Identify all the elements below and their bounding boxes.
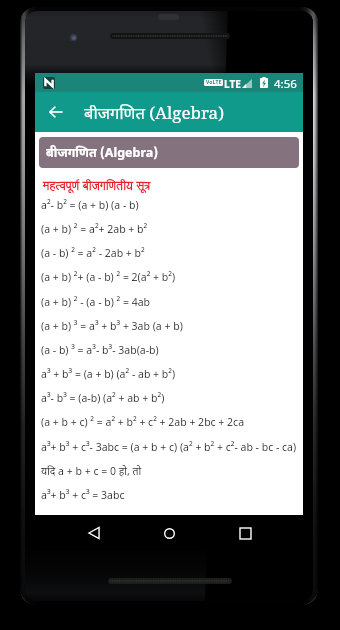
staticText: (a + b) ³ = a³ + b³ + 3ab (a + b) xyxy=(41,319,309,333)
staticText: (a - b) ² = a² - 2ab + b² xyxy=(41,246,309,260)
staticText: a³+ b³ + c³- 3abc = (a + b + c) (a² + b²… xyxy=(41,440,309,454)
staticText: a³- b³ = (a-b) (a² + ab + b²) xyxy=(41,391,309,405)
staticText: यदि a + b + c = 0 हो, तो xyxy=(41,464,309,478)
staticText: a³ + b³ = (a + b) (a² - ab + b²) xyxy=(41,367,309,381)
button[interactable]: Home xyxy=(152,516,186,550)
staticText: महत्वपूर्ण बीजगणितीय सूत्र xyxy=(43,177,151,195)
staticText: बीजगणित (Algebra) xyxy=(46,144,159,161)
staticText: 4:56 xyxy=(274,76,297,92)
button[interactable]: Back xyxy=(77,516,111,550)
staticText: VoLTE xyxy=(206,79,222,86)
staticText: (a + b) ² = a²+ 2ab + b² xyxy=(41,222,309,236)
staticText: बीजगणित (Algebra) xyxy=(84,101,225,124)
staticText: a²- b² = (a + b) (a - b) xyxy=(41,198,309,212)
staticText: (a + b + c) ² = a² + b² + c² + 2ab + 2bc… xyxy=(41,415,309,429)
staticText: (a + b) ²+ (a - b) ² = 2(a² + b²) xyxy=(41,270,309,284)
staticText: a³+ b³ + c³ = 3abc xyxy=(41,488,309,502)
button[interactable]: बीजगणित (Algebra) xyxy=(39,137,299,168)
button[interactable]: Back xyxy=(37,93,75,131)
button[interactable]: Recents xyxy=(228,516,262,550)
staticText: LTE xyxy=(224,77,241,91)
staticText: (a + b) ² - (a - b) ² = 4ab xyxy=(41,295,309,309)
staticText: (a - b) ³ = a³- b³- 3ab(a-b) xyxy=(41,343,309,357)
